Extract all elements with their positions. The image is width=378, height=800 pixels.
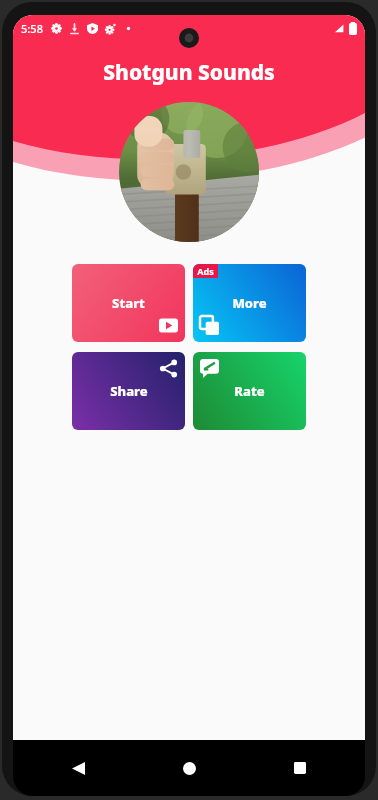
button[interactable]: Recent apps [283,751,317,785]
staticText: Shotgun Sounds [103,58,275,87]
other: Rate [200,359,219,378]
button[interactable]: Back [61,751,95,785]
staticText: Share [110,382,148,400]
staticText: More [232,294,267,312]
other: Start [159,316,178,335]
staticText: Ads [197,265,214,277]
button[interactable]: More [193,264,306,342]
button[interactable]: Share [72,352,185,430]
staticText: Rate [234,382,265,400]
button[interactable]: Rate [193,352,306,430]
button[interactable]: Home [172,751,206,785]
button[interactable]: Start [72,264,185,342]
staticText: 5:58 [21,21,43,36]
other: Share [159,359,178,378]
other: More apps [200,316,219,335]
staticText: Start [112,294,145,312]
